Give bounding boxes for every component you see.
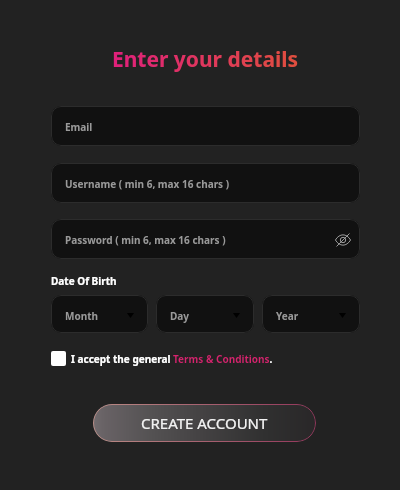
button[interactable]: Day (156, 295, 254, 333)
staticText: Date Of Birth (51, 274, 117, 288)
button[interactable]: Password ( min 6, max 16 chars ) (51, 219, 360, 259)
button[interactable]: I accept the general Terms & Conditions. (51, 351, 273, 366)
staticText: Day (170, 309, 190, 323)
button[interactable]: Username ( min 6, max 16 chars ) (51, 163, 360, 203)
button[interactable]: Show password (330, 227, 356, 253)
button[interactable]: CREATE ACCOUNT (93, 404, 316, 442)
button[interactable]: Email (51, 106, 360, 146)
staticText: Password ( min 6, max 16 chars ) (65, 233, 226, 247)
staticText: Year (276, 309, 299, 323)
staticText: I accept the general Terms & Conditions. (71, 352, 273, 366)
staticText: Month (65, 309, 99, 323)
staticText: Enter your details (5, 45, 400, 74)
button[interactable]: Year (262, 295, 360, 333)
staticText: Email (65, 120, 93, 134)
staticText: CREATE ACCOUNT (141, 413, 268, 433)
button[interactable]: Month (51, 295, 148, 333)
staticText: Username ( min 6, max 16 chars ) (65, 177, 230, 191)
